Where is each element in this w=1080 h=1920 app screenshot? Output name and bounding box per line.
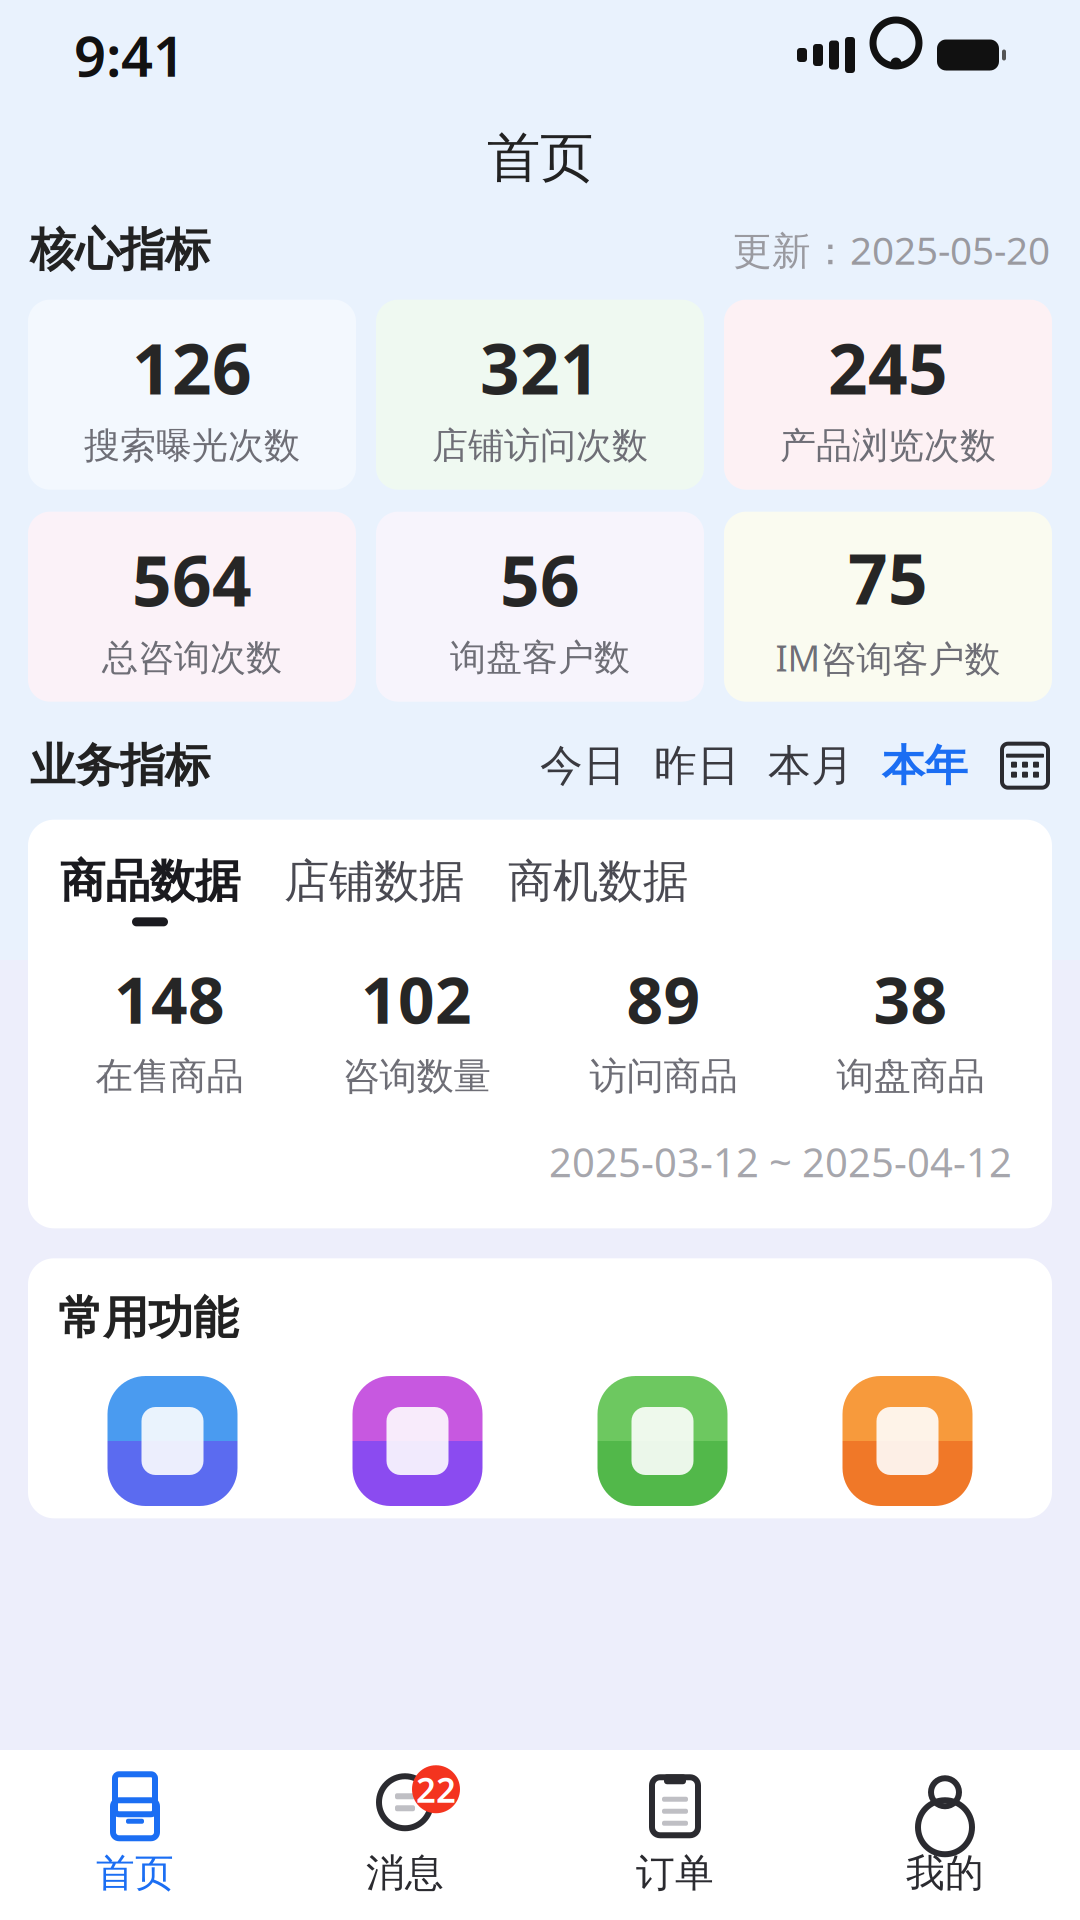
staticText: 总咨询次数: [102, 636, 282, 680]
staticText: 148: [114, 956, 225, 1041]
staticText: IM咨询客户数: [775, 634, 1000, 682]
staticText: 38: [873, 956, 947, 1041]
button[interactable]: 564: [28, 512, 356, 702]
staticText: 56: [500, 533, 580, 626]
staticText: 咨询数量: [342, 1053, 490, 1099]
button[interactable]: 昨日: [640, 738, 754, 794]
staticText: 店铺数据: [284, 854, 464, 909]
button[interactable]: 新建单据: [295, 1376, 540, 1506]
button[interactable]: 客户管理: [540, 1376, 785, 1506]
button[interactable]: 报价单: [785, 1376, 1030, 1506]
staticText: 访问商品: [589, 1053, 737, 1099]
button[interactable]: 今日: [526, 738, 640, 794]
staticText: 首页: [487, 125, 593, 191]
button[interactable]: 商机数据: [508, 854, 688, 926]
button[interactable]: 选择日期: [982, 741, 1050, 791]
button[interactable]: 我的: [810, 1750, 1080, 1920]
button[interactable]: 本月: [754, 738, 868, 794]
staticText: 本月: [768, 739, 854, 792]
button[interactable]: 321: [376, 300, 704, 490]
staticText: 更新：2025-05-20: [733, 224, 1050, 275]
staticText: 询盘商品: [836, 1053, 984, 1099]
staticText: 2025-03-12 ~ 2025-04-12: [549, 1135, 1012, 1188]
staticText: 564: [132, 533, 252, 626]
staticText: 订单: [636, 1849, 714, 1897]
staticText: 我的: [906, 1849, 984, 1897]
staticText: 在售商品: [95, 1053, 243, 1099]
button[interactable]: 126: [28, 300, 356, 490]
button[interactable]: 22: [270, 1750, 540, 1920]
staticText: 搜索曝光次数: [84, 424, 300, 468]
staticText: 询盘客户数: [450, 636, 630, 680]
staticText: 店铺访问次数: [432, 424, 648, 468]
staticText: 首页: [96, 1849, 174, 1897]
button[interactable]: 首页: [0, 1750, 270, 1920]
staticText: 常用功能: [58, 1290, 238, 1346]
staticText: 业务指标: [30, 738, 210, 793]
staticText: 22: [416, 1766, 456, 1812]
staticText: 本年: [882, 739, 968, 792]
staticText: 9:41: [74, 18, 185, 92]
button[interactable]: 订单: [540, 1750, 810, 1920]
staticText: 核心指标: [30, 222, 210, 278]
button[interactable]: 56: [376, 512, 704, 702]
staticText: 126: [132, 321, 252, 414]
button[interactable]: 汇率换算: [50, 1376, 295, 1506]
staticText: 321: [480, 321, 600, 414]
staticText: 昨日: [654, 739, 740, 792]
button[interactable]: 75: [724, 512, 1052, 702]
staticText: 75: [848, 532, 928, 624]
button[interactable]: 店铺数据: [284, 854, 464, 926]
button[interactable]: 商品数据: [60, 854, 240, 926]
button[interactable]: 245: [724, 300, 1052, 490]
staticText: 今日: [540, 739, 626, 792]
staticText: 102: [361, 956, 472, 1041]
staticText: 商机数据: [508, 854, 688, 909]
staticText: 商品数据: [60, 854, 240, 909]
staticText: 245: [828, 321, 948, 414]
staticText: 产品浏览次数: [780, 424, 996, 468]
button[interactable]: 本年: [868, 738, 982, 794]
staticText: 89: [626, 956, 700, 1041]
staticText: 消息: [366, 1849, 444, 1897]
